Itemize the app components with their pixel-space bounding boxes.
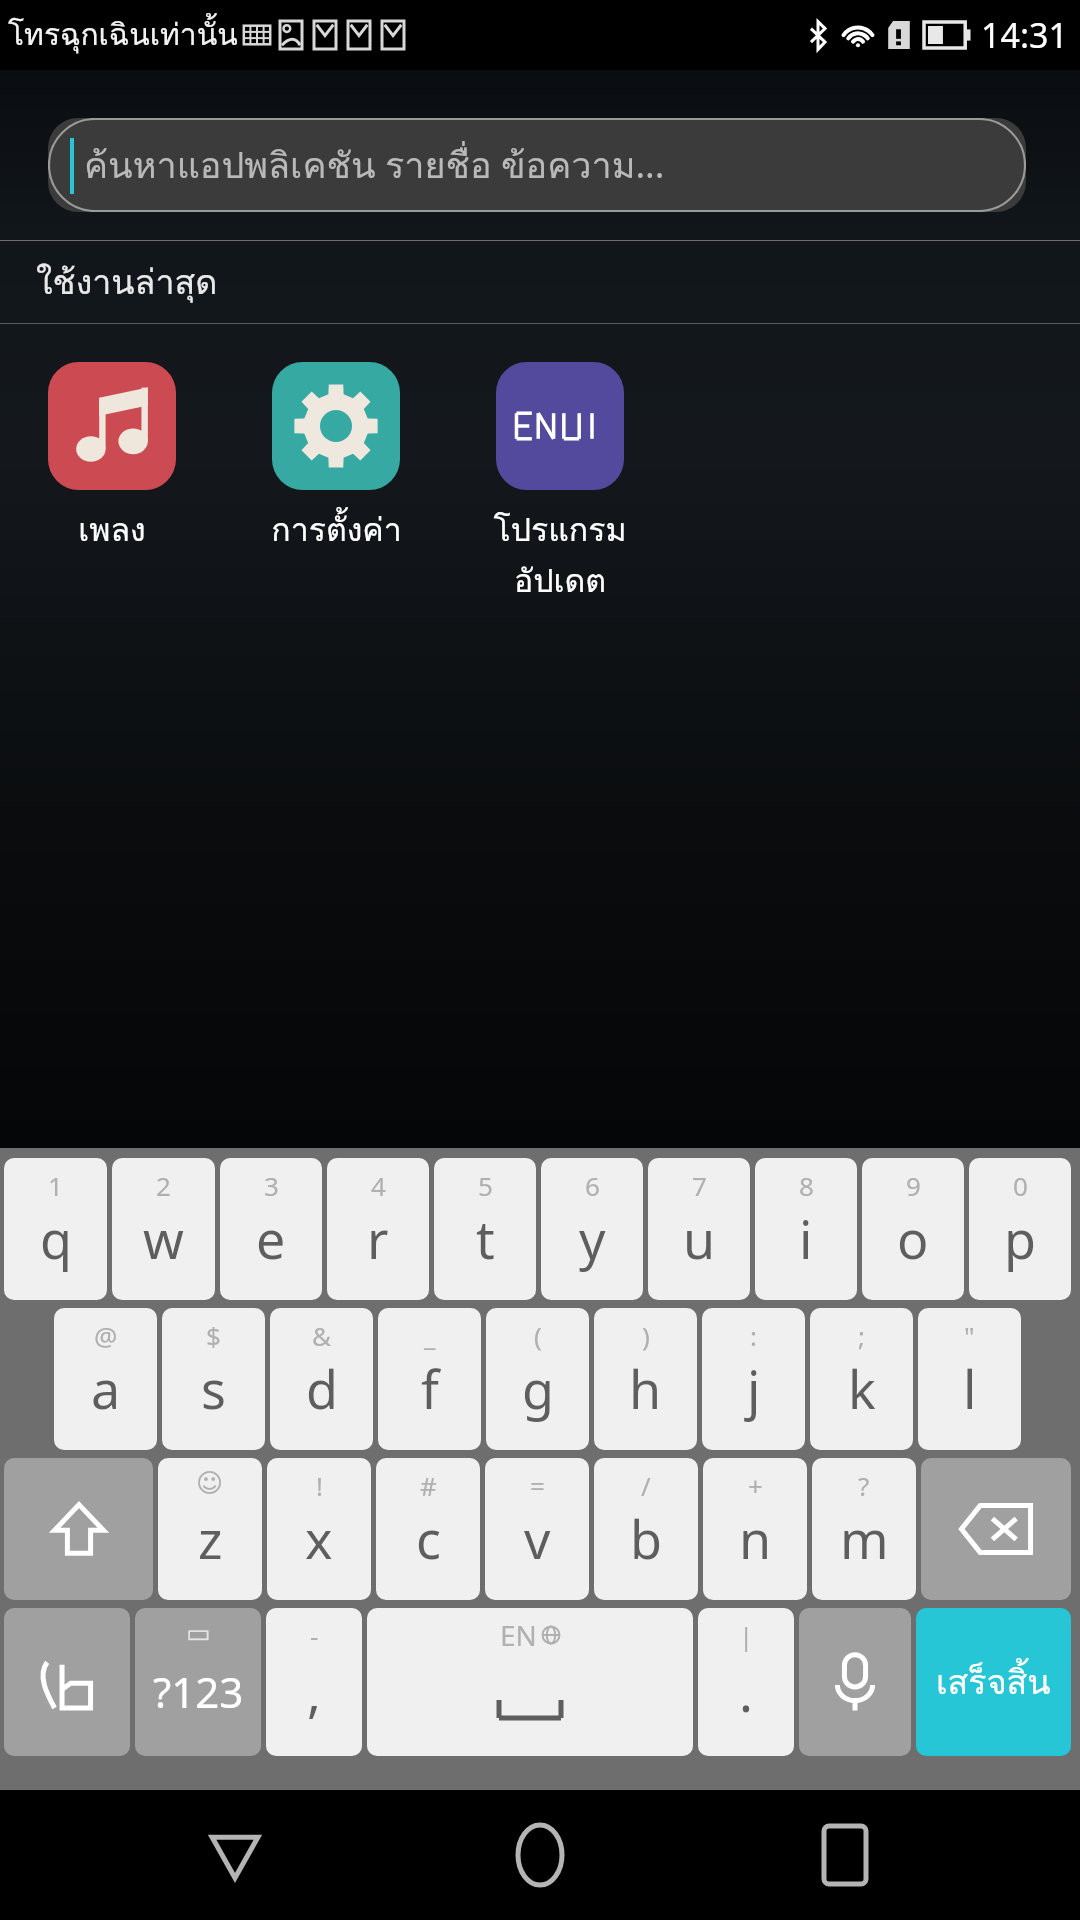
- button[interactable]: Backspace: [921, 1458, 1071, 1600]
- staticText: ใช้งานล่าสุด: [36, 255, 218, 309]
- button[interactable]: โปรแกรมอัปเดต: [448, 362, 672, 606]
- staticText: 6: [585, 1168, 600, 1203]
- staticText: l: [963, 1353, 977, 1424]
- staticText: u: [683, 1203, 716, 1274]
- staticText: 8: [799, 1168, 814, 1203]
- button[interactable]: Space: [367, 1608, 693, 1756]
- staticText: 4: [371, 1168, 386, 1203]
- button[interactable]: Voice input: [799, 1608, 911, 1756]
- staticText: ): [642, 1318, 650, 1353]
- button[interactable]: Handwriting input: [4, 1608, 130, 1756]
- button[interactable]: เพลง: [0, 362, 224, 555]
- staticText: y: [579, 1203, 606, 1274]
- staticText: m: [840, 1503, 889, 1574]
- staticText: k: [848, 1353, 876, 1424]
- staticText: a: [91, 1353, 121, 1424]
- staticText: $: [206, 1318, 221, 1353]
- staticText: โทรฉุกเฉินเท่านั้น: [8, 11, 238, 59]
- button[interactable]: ;: [810, 1308, 913, 1450]
- button[interactable]: -: [266, 1608, 362, 1756]
- button[interactable]: Shift: [4, 1458, 153, 1600]
- button[interactable]: ค้นหาแอปพลิเคชัน รายชื่อ ข้อความ...: [48, 118, 1026, 212]
- staticText: 0: [1013, 1168, 1028, 1203]
- staticText: r: [367, 1203, 389, 1274]
- staticText: o: [897, 1203, 929, 1274]
- button[interactable]: :: [702, 1308, 805, 1450]
- button[interactable]: การตั้งค่า: [224, 362, 448, 555]
- staticText: +: [748, 1468, 763, 1503]
- staticText: /: [641, 1468, 651, 1503]
- button[interactable]: 3: [220, 1158, 322, 1300]
- button[interactable]: (: [486, 1308, 589, 1450]
- staticText: w: [143, 1203, 184, 1274]
- button[interactable]: |: [698, 1608, 794, 1756]
- button[interactable]: 4: [327, 1158, 429, 1300]
- staticText: .: [739, 1656, 753, 1727]
- button[interactable]: 7: [648, 1158, 750, 1300]
- staticText: t: [476, 1203, 495, 1274]
- staticText: q: [40, 1203, 72, 1274]
- staticText: เสร็จสิ้น: [936, 1655, 1051, 1709]
- button[interactable]: Recent apps: [775, 1790, 915, 1920]
- staticText: 1: [48, 1168, 63, 1203]
- staticText: ▭: [186, 1618, 211, 1648]
- button[interactable]: 9: [862, 1158, 964, 1300]
- staticText: 3: [264, 1168, 279, 1203]
- staticText: j: [747, 1353, 761, 1424]
- staticText: v: [524, 1503, 551, 1574]
- button[interactable]: Back: [165, 1790, 305, 1920]
- staticText: ,: [307, 1656, 321, 1727]
- button[interactable]: เสร็จสิ้น: [916, 1608, 1071, 1756]
- staticText: p: [1004, 1203, 1036, 1274]
- staticText: :: [750, 1318, 757, 1353]
- button[interactable]: 6: [541, 1158, 643, 1300]
- staticText: ;: [858, 1318, 865, 1353]
- staticText: @: [94, 1318, 118, 1353]
- staticText: ?123: [153, 1663, 244, 1720]
- button[interactable]: +: [703, 1458, 807, 1600]
- button[interactable]: #: [376, 1458, 480, 1600]
- button[interactable]: ?: [812, 1458, 916, 1600]
- button[interactable]: _: [378, 1308, 481, 1450]
- button[interactable]: 8: [755, 1158, 857, 1300]
- staticText: 14:31: [981, 12, 1068, 58]
- staticText: |: [739, 1618, 754, 1653]
- staticText: b: [630, 1503, 662, 1574]
- staticText: การตั้งค่า: [271, 504, 402, 555]
- button[interactable]: 2: [112, 1158, 215, 1300]
- staticText: 9: [906, 1168, 921, 1203]
- button[interactable]: @: [54, 1308, 157, 1450]
- staticText: 7: [692, 1168, 707, 1203]
- button[interactable]: Home: [470, 1790, 610, 1920]
- staticText: (: [534, 1318, 542, 1353]
- staticText: ค้นหาแอปพลิเคชัน รายชื่อ ข้อความ...: [84, 137, 665, 194]
- staticText: n: [739, 1503, 772, 1574]
- button[interactable]: =: [485, 1458, 589, 1600]
- staticText: i: [799, 1203, 813, 1274]
- staticText: e: [256, 1203, 286, 1274]
- button[interactable]: !: [267, 1458, 371, 1600]
- staticText: 2: [156, 1168, 171, 1203]
- button[interactable]: 0: [969, 1158, 1071, 1300]
- staticText: f: [421, 1353, 439, 1424]
- button[interactable]: ▭: [135, 1608, 261, 1756]
- staticText: ": [964, 1318, 975, 1353]
- staticText: &: [312, 1318, 332, 1353]
- staticText: =: [530, 1468, 545, 1503]
- button[interactable]: &: [270, 1308, 373, 1450]
- staticText: ☺: [196, 1468, 224, 1498]
- staticText: #: [420, 1468, 437, 1503]
- button[interactable]: ): [594, 1308, 697, 1450]
- button[interactable]: 1: [4, 1158, 107, 1300]
- staticText: _: [424, 1318, 436, 1353]
- button[interactable]: ": [918, 1308, 1021, 1450]
- staticText: c: [416, 1503, 441, 1574]
- staticText: d: [306, 1353, 338, 1424]
- button[interactable]: 5: [434, 1158, 536, 1300]
- button[interactable]: $: [162, 1308, 265, 1450]
- button[interactable]: ☺: [158, 1458, 262, 1600]
- staticText: s: [201, 1353, 226, 1424]
- staticText: !: [316, 1468, 323, 1503]
- button[interactable]: /: [594, 1458, 698, 1600]
- staticText: EN: [500, 1616, 537, 1654]
